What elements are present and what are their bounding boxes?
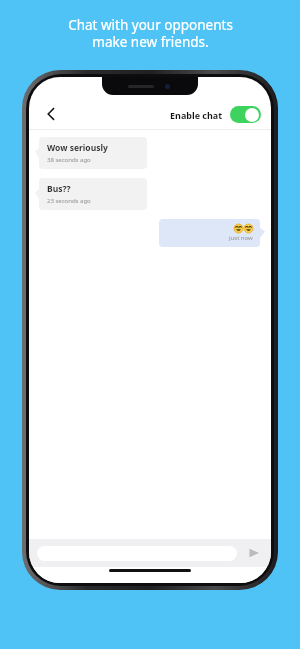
button[interactable]: Wow seriously <box>39 137 147 169</box>
button[interactable]: Bus?? <box>39 178 147 210</box>
button[interactable]: Send <box>245 544 263 562</box>
staticText: Chat with your opponents make new friend… <box>68 16 233 51</box>
button[interactable]: Back <box>39 102 63 126</box>
button[interactable]: Enable chat <box>170 106 261 123</box>
staticText: just now <box>229 234 253 242</box>
staticText: Wow seriously <box>47 142 108 154</box>
staticText: Enable chat <box>170 109 223 121</box>
staticText: Bus?? <box>47 183 71 195</box>
staticText: 38 seconds ago <box>47 156 91 164</box>
staticText: 23 seconds ago <box>47 197 91 205</box>
button[interactable]: just now <box>159 219 260 247</box>
